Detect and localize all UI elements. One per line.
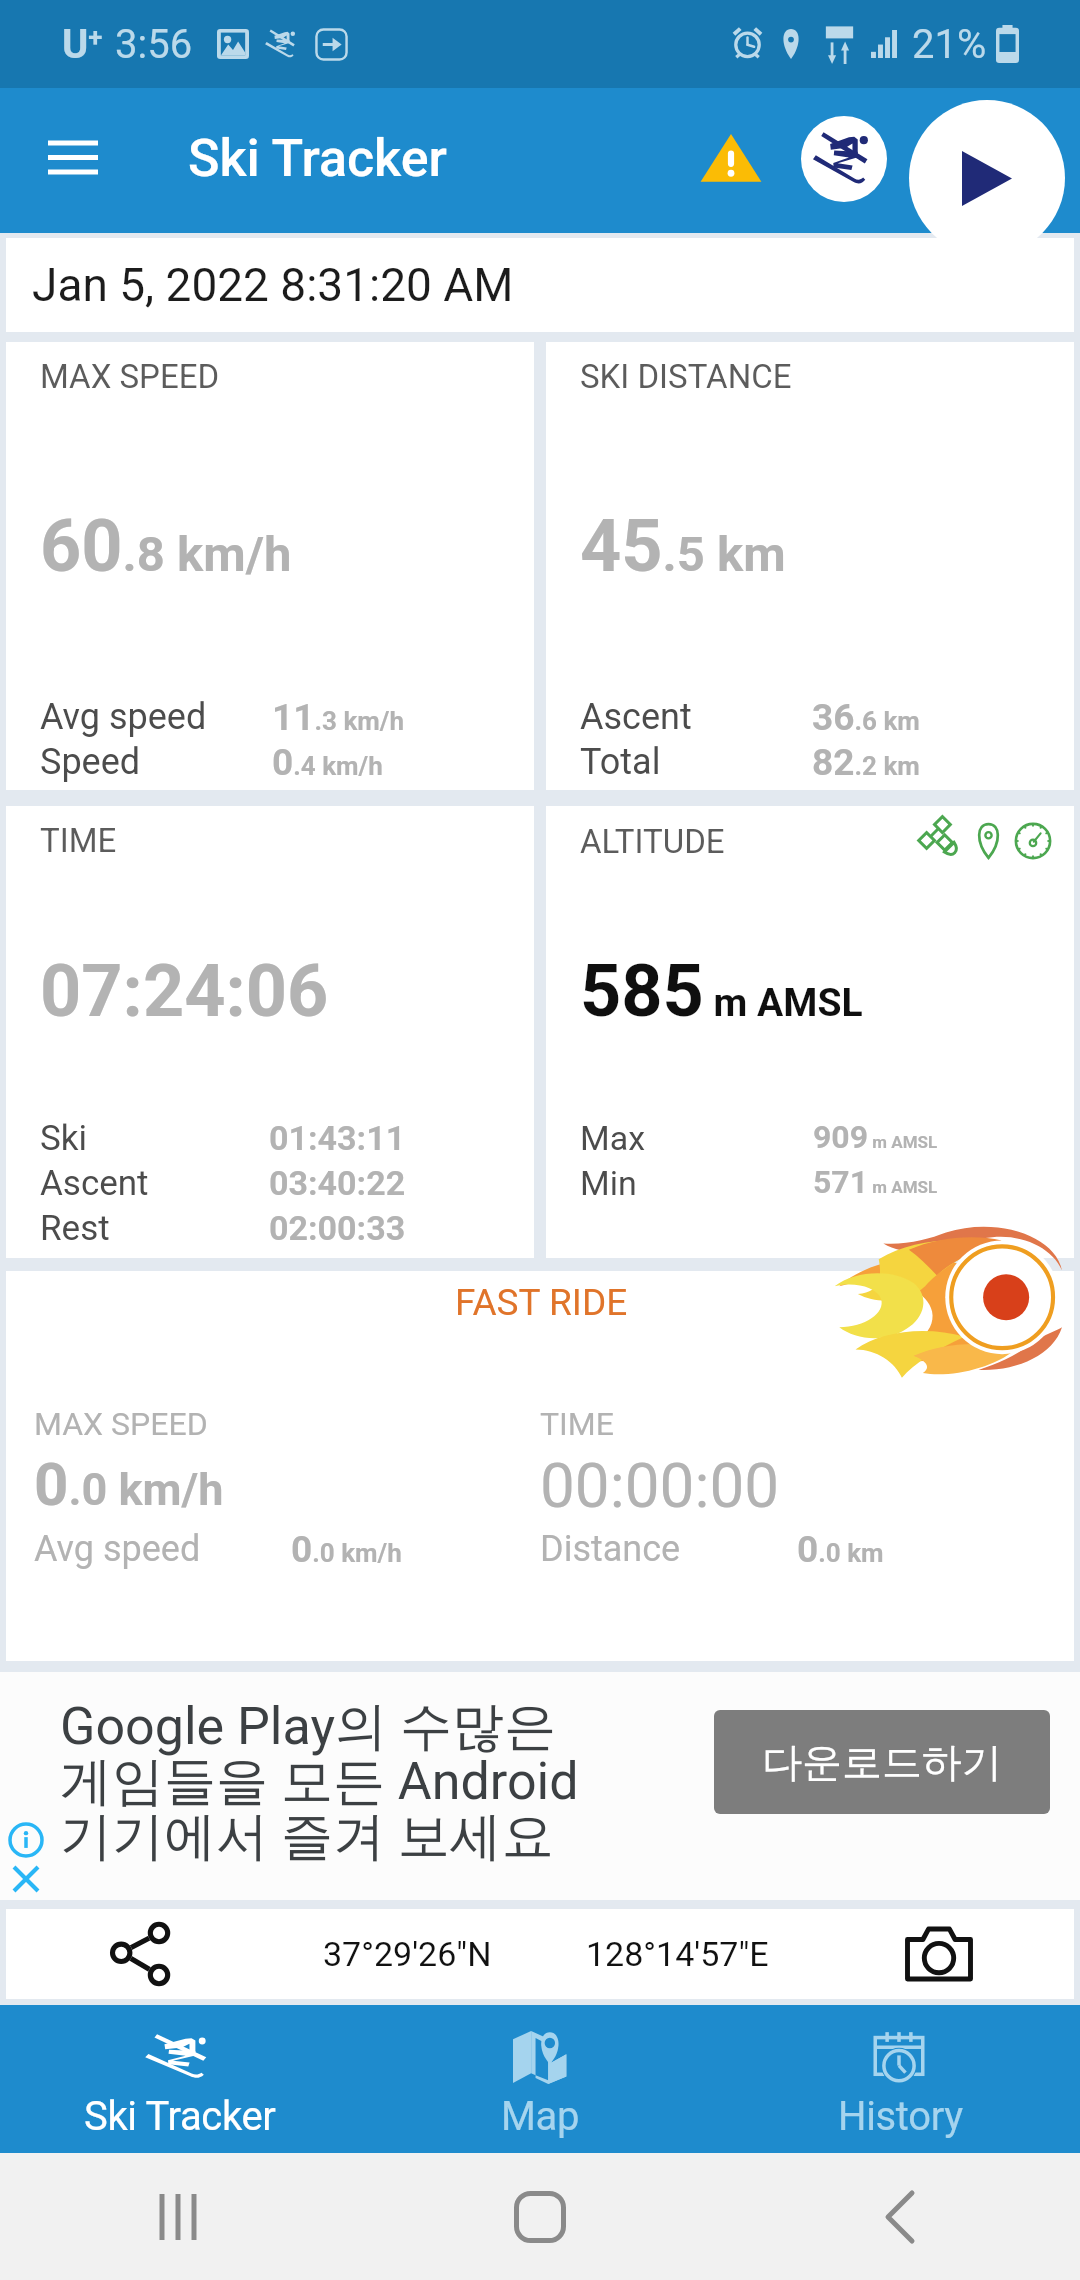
staticText: Distance xyxy=(540,1528,797,1570)
staticText: 0.0 km xyxy=(797,1528,884,1571)
button[interactable]: Camera xyxy=(804,1909,1074,1999)
staticText: FAST RIDE xyxy=(455,1281,628,1324)
staticText: History xyxy=(838,2093,963,2140)
staticText: Jan 5, 2022 8:31:20 AM xyxy=(32,258,514,312)
staticText: 01:43:11 xyxy=(269,1118,406,1158)
staticText: 909 m AMSL xyxy=(813,1118,938,1156)
staticText: Ascent xyxy=(40,1163,269,1204)
button[interactable]: Ski Tracker xyxy=(0,2005,360,2153)
button[interactable]: Share xyxy=(6,1909,276,1999)
staticText: 36.6 km xyxy=(812,696,920,739)
staticText: 07:24:06 xyxy=(40,949,329,1033)
staticText: MAX SPEED xyxy=(34,1405,208,1443)
staticText: 128°14'57"E xyxy=(586,1934,769,1974)
staticText: 03:40:22 xyxy=(269,1163,406,1203)
staticText: 0.0 km/h xyxy=(34,1449,224,1519)
staticText: Google Play의 수많은 게임들을 모든 Android 기기에서 즐겨… xyxy=(60,1694,579,1869)
staticText: 3:56 xyxy=(115,21,193,68)
button[interactable]: FAST RIDE xyxy=(6,1271,1074,1661)
button[interactable]: Jan 5, 2022 8:31:20 AM xyxy=(6,238,1074,332)
staticText: Avg speed xyxy=(34,1528,291,1570)
staticText: 585 m AMSL xyxy=(580,949,863,1033)
button[interactable]: TIME xyxy=(6,806,534,1258)
staticText: 82.2 km xyxy=(812,741,920,784)
staticText: 다운로드하기 xyxy=(762,1737,1002,1787)
staticText: TIME xyxy=(540,1405,614,1443)
staticText: MAX SPEED xyxy=(40,357,220,396)
button[interactable]: ALTITUDE xyxy=(546,806,1074,1258)
staticText: Ski Tracker xyxy=(84,2093,276,2140)
staticText: 0.0 km/h xyxy=(291,1528,402,1571)
button[interactable]: 다운로드하기 xyxy=(714,1710,1050,1814)
staticText: Map xyxy=(501,2093,580,2140)
button[interactable]: Warning xyxy=(683,111,779,207)
staticText: 02:00:33 xyxy=(269,1208,406,1248)
staticText: 21% xyxy=(912,21,987,68)
staticText: SKI DISTANCE xyxy=(580,357,792,396)
staticText: Speed xyxy=(40,741,272,783)
button[interactable]: Ski mode xyxy=(796,111,892,207)
staticText: 0.4 km/h xyxy=(272,741,383,784)
staticText: Rest xyxy=(40,1208,269,1249)
staticText: 60.8 km/h xyxy=(40,504,292,588)
staticText: Ascent xyxy=(580,696,812,738)
staticText: Max xyxy=(580,1118,813,1158)
staticText: Min xyxy=(580,1163,813,1203)
staticText: Ski Tracker xyxy=(188,128,447,189)
staticText: 571 m AMSL xyxy=(813,1163,938,1201)
staticText: Avg speed xyxy=(40,696,272,738)
staticText: ALTITUDE xyxy=(580,822,725,861)
staticText: 00:00:00 xyxy=(540,1449,780,1522)
staticText: U+ xyxy=(62,21,103,68)
button[interactable]: SKI DISTANCE xyxy=(546,342,1074,790)
button[interactable]: MAX SPEED xyxy=(6,342,534,790)
staticText: TIME xyxy=(40,821,117,860)
staticText: 45.5 km xyxy=(580,504,786,588)
button[interactable]: Open navigation menu xyxy=(25,110,121,206)
staticText: Ski xyxy=(40,1118,269,1159)
staticText: 37°29'26"N xyxy=(323,1934,492,1974)
staticText: 11.3 km/h xyxy=(272,696,404,739)
button[interactable]: History xyxy=(720,2005,1080,2153)
button[interactable]: Map xyxy=(360,2005,720,2153)
staticText: Total xyxy=(580,741,812,783)
button[interactable]: Start tracking xyxy=(909,100,1065,256)
